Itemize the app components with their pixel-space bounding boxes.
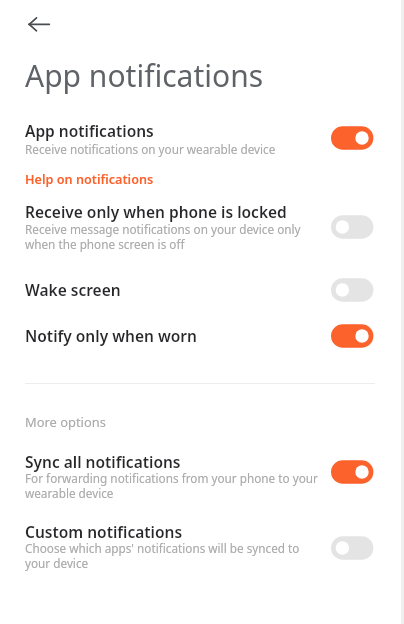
button[interactable]: Notify only when worn, on [325, 320, 379, 352]
button[interactable]: Help on notifications [25, 166, 154, 190]
button[interactable]: Custom notifications, off [325, 532, 379, 564]
button[interactable]: Receive only when phone is locked [0, 198, 404, 258]
staticText: Help on notifications [25, 170, 154, 187]
staticText: App notifications [25, 120, 154, 141]
button[interactable]: Notify only when worn [0, 318, 404, 354]
button[interactable]: App notifications, on [325, 122, 379, 154]
staticText: Custom notifications [25, 521, 183, 542]
staticText: Sync all notifications [25, 451, 181, 472]
staticText: Wake screen [25, 279, 121, 300]
staticText: App notifications [25, 55, 264, 96]
staticText: Choose which apps' notifications will be… [25, 540, 365, 571]
button[interactable]: Custom notifications [0, 518, 404, 578]
staticText: Receive notifications on your wearable d… [25, 141, 365, 157]
button[interactable]: Wake screen, off [325, 274, 379, 306]
staticText: More options [25, 413, 106, 431]
staticText: Receive message notifications on your de… [25, 221, 365, 252]
button[interactable]: Sync all notifications [0, 448, 404, 508]
staticText: Receive only when phone is locked [25, 201, 287, 222]
button[interactable]: Sync all notifications, on [325, 456, 379, 488]
staticText: Notify only when worn [25, 325, 197, 346]
button[interactable]: Receive only when phone is locked, off [325, 211, 379, 243]
staticText: For forwarding notifications from your p… [25, 470, 365, 501]
button[interactable]: App notifications [0, 113, 404, 160]
button[interactable]: Wake screen [0, 272, 404, 308]
button[interactable]: Navigate up [15, 1, 61, 47]
